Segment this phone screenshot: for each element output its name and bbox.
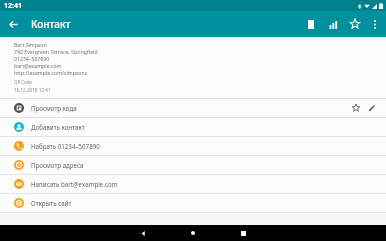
button[interactable]: Document <box>300 13 322 35</box>
button[interactable]: Набрать 01234–567890 <box>0 137 386 155</box>
staticText: bart@example.com <box>14 62 62 69</box>
staticText: Набрать 01234–567890 <box>31 142 380 150</box>
button[interactable]: Statistics <box>322 13 344 35</box>
staticText: Открыть сайт <box>31 199 380 207</box>
button[interactable]: Home <box>185 225 201 241</box>
button[interactable]: Recent apps <box>235 225 251 241</box>
button[interactable]: Back <box>135 225 151 241</box>
staticText: Контакт <box>31 17 71 31</box>
button[interactable]: Add to favorites <box>348 100 364 116</box>
staticText: Добавить контакт <box>31 123 380 131</box>
button[interactable]: Favorite <box>344 13 366 35</box>
staticText: 01234–567890 <box>14 55 50 62</box>
staticText: 742 Evergreen Terrace, Springfield <box>14 48 98 55</box>
staticText: Bart Simpson <box>14 41 47 48</box>
staticText: 10.12.2018 12:41 <box>14 87 51 93</box>
staticText: http://example.com/simpsons <box>14 69 88 76</box>
button[interactable]: Просмотр кода <box>0 99 386 117</box>
staticText: Просмотр адреса <box>31 161 380 169</box>
staticText: Просмотр кода <box>31 104 348 112</box>
staticText: QR Code <box>14 79 32 85</box>
button[interactable]: Просмотр адреса <box>0 156 386 174</box>
button[interactable]: Back <box>0 11 26 37</box>
button[interactable]: Написать bart@example.com <box>0 175 386 193</box>
button[interactable]: Открыть сайт <box>0 194 386 212</box>
button[interactable]: Добавить контакт <box>0 118 386 136</box>
button[interactable]: More options <box>366 15 384 33</box>
staticText: Написать bart@example.com <box>31 180 380 188</box>
staticText: 12:41 <box>4 1 22 11</box>
button[interactable]: Edit <box>364 100 380 116</box>
